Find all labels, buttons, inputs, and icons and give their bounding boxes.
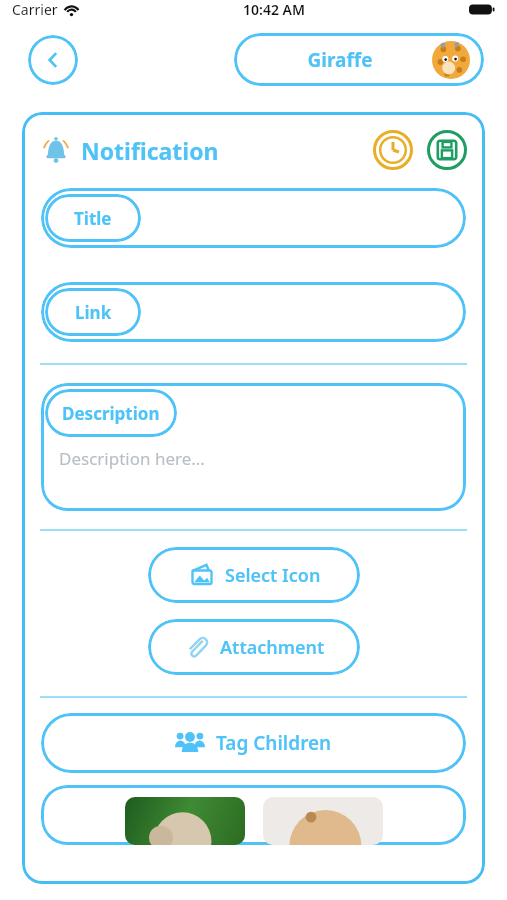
button[interactable]: [263, 797, 383, 845]
staticText: Attachment: [220, 635, 325, 660]
button[interactable]: Schedule: [371, 128, 415, 172]
staticText: Giraffe: [248, 47, 432, 73]
button[interactable]: Tag Children: [41, 713, 466, 773]
staticText: Notification: [81, 135, 219, 166]
button[interactable]: [125, 797, 245, 845]
staticText: Description here...: [59, 447, 205, 470]
staticText: Title: [74, 207, 112, 230]
button[interactable]: Giraffe: [234, 33, 484, 86]
button[interactable]: Back: [28, 35, 78, 85]
button[interactable]: [41, 282, 466, 342]
staticText: Description: [62, 402, 160, 425]
button[interactable]: [41, 383, 466, 511]
staticText: Carrier: [12, 0, 58, 19]
button[interactable]: Attachment: [148, 619, 360, 675]
staticText: 10:42 AM: [243, 0, 305, 19]
button[interactable]: Save: [425, 128, 469, 172]
staticText: Tag Children: [216, 730, 332, 756]
button[interactable]: Select Icon: [148, 547, 360, 603]
staticText: Select Icon: [225, 563, 321, 588]
staticText: Link: [75, 301, 112, 324]
button[interactable]: [41, 188, 466, 248]
